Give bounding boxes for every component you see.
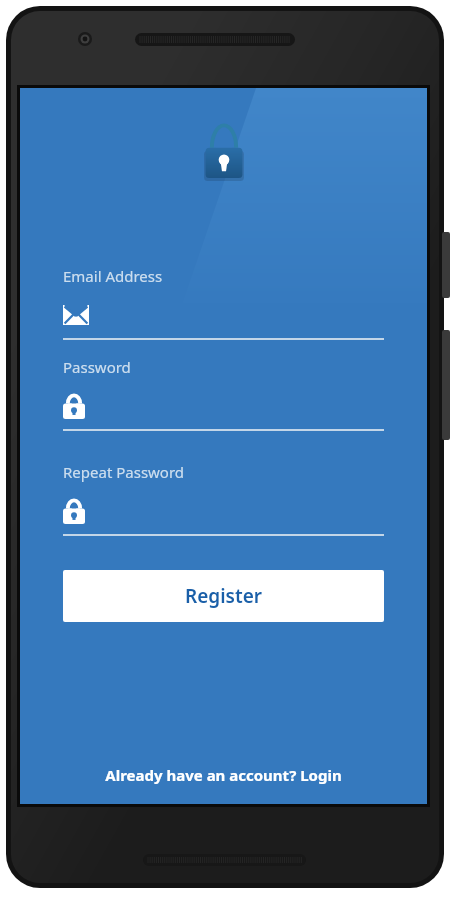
- staticText: Email Address: [63, 266, 163, 286]
- button[interactable]: Password field: [63, 357, 384, 431]
- staticText: Already have an account? Login: [105, 765, 342, 785]
- button[interactable]: Already have an account? Login: [20, 753, 427, 797]
- staticText: Password: [63, 357, 131, 377]
- staticText: Register: [185, 583, 263, 609]
- button[interactable]: Register: [63, 570, 384, 622]
- button[interactable]: Email address field: [63, 266, 384, 340]
- staticText: Repeat Password: [63, 462, 185, 482]
- button[interactable]: Repeat password field: [63, 462, 384, 536]
